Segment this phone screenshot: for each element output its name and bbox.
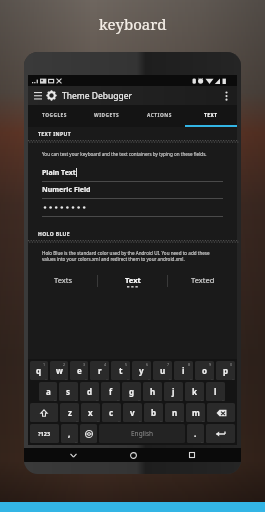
- button[interactable]: s: [59, 382, 78, 401]
- button[interactable]: 5: [111, 361, 130, 380]
- staticText: HOLO BLUE: [38, 231, 70, 238]
- staticText: Holo Blue is the standard color used by …: [42, 250, 223, 262]
- button[interactable]: Plain Text: [42, 164, 223, 182]
- staticText: v: [130, 407, 135, 418]
- button[interactable]: English: [99, 424, 185, 443]
- staticText: ACTIONS: [147, 112, 172, 119]
- button[interactable]: j: [164, 382, 183, 401]
- staticText: a: [46, 386, 51, 397]
- staticText: c: [109, 407, 114, 418]
- staticText: p: [223, 365, 229, 376]
- button[interactable]: n: [165, 403, 184, 422]
- staticText: m: [192, 407, 200, 418]
- staticText: TEXT: [204, 112, 218, 119]
- staticText: 6: [146, 362, 149, 367]
- button[interactable]: .: [187, 424, 204, 443]
- button[interactable]: b: [144, 403, 163, 422]
- staticText: z: [68, 407, 72, 418]
- button[interactable]: 2: [50, 361, 68, 380]
- button[interactable]: 0: [216, 361, 235, 380]
- staticText: 3: [83, 362, 86, 367]
- button[interactable]: g: [122, 382, 141, 401]
- staticText: d: [87, 386, 93, 397]
- staticText: 0: [230, 362, 233, 367]
- button[interactable]: Navigation drawer: [32, 90, 44, 102]
- staticText: o: [202, 365, 207, 376]
- button[interactable]: Numeric Field: [42, 182, 223, 199]
- button[interactable]: h: [143, 382, 162, 401]
- button[interactable]: 8: [174, 361, 193, 380]
- button[interactable]: l: [206, 382, 225, 401]
- button[interactable]: f: [101, 382, 120, 401]
- button[interactable]: m: [186, 403, 205, 422]
- staticText: ,: [68, 428, 71, 439]
- staticText: .: [194, 428, 197, 439]
- button[interactable]: Texted: [168, 275, 237, 285]
- button[interactable]: Enter: [206, 424, 235, 443]
- staticText: t: [119, 365, 123, 376]
- button[interactable]: More options: [220, 90, 232, 102]
- staticText: keyboard: [99, 14, 167, 34]
- staticText: u: [160, 365, 166, 376]
- button[interactable]: a: [39, 382, 57, 401]
- staticText: TOGGLES: [42, 112, 67, 119]
- staticText: English: [131, 429, 154, 438]
- button[interactable]: Recent apps: [182, 448, 202, 462]
- button[interactable]: c: [102, 403, 121, 422]
- staticText: 5: [125, 362, 128, 367]
- staticText: w: [56, 365, 63, 376]
- staticText: 8: [188, 362, 191, 367]
- button[interactable]: ?123: [30, 424, 59, 443]
- button[interactable]: WIDGETS: [81, 105, 133, 125]
- staticText: Texts: [54, 275, 72, 285]
- staticText: 9: [209, 362, 212, 367]
- button[interactable]: v: [123, 403, 142, 422]
- button[interactable]: x: [81, 403, 100, 422]
- staticText: 7: [167, 362, 170, 367]
- staticText: x: [88, 407, 93, 418]
- button[interactable]: 9: [195, 361, 214, 380]
- button[interactable]: TEXT: [185, 105, 237, 125]
- button[interactable]: Delete: [207, 403, 235, 422]
- staticText: 2: [63, 362, 66, 367]
- button[interactable]: Text: [98, 275, 167, 288]
- staticText: s: [66, 386, 71, 397]
- button[interactable]: Home: [123, 448, 143, 462]
- button[interactable]: ,: [61, 424, 78, 443]
- button[interactable]: 3: [70, 361, 88, 380]
- staticText: ?123: [38, 430, 51, 437]
- staticText: 1: [43, 362, 46, 367]
- button[interactable]: z: [60, 403, 79, 422]
- staticText: q: [36, 365, 42, 376]
- button[interactable]: TOGGLES: [28, 105, 81, 125]
- staticText: g: [129, 386, 135, 397]
- staticText: f: [109, 386, 113, 397]
- staticText: r: [98, 365, 102, 376]
- staticText: 4: [104, 362, 107, 367]
- button[interactable]: d: [80, 382, 99, 401]
- button[interactable]: 6: [132, 361, 151, 380]
- staticText: Text: [125, 275, 141, 285]
- staticText: WIDGETS: [94, 112, 120, 119]
- button[interactable]: Texts: [28, 275, 97, 285]
- button[interactable]: Change language: [80, 424, 97, 443]
- staticText: TEXT INPUT: [38, 131, 72, 138]
- staticText: k: [192, 386, 197, 397]
- button[interactable]: 7: [153, 361, 172, 380]
- staticText: h: [150, 386, 156, 397]
- button[interactable]: [42, 199, 223, 217]
- button[interactable]: ACTIONS: [133, 105, 185, 125]
- button[interactable]: Back: [63, 448, 83, 462]
- staticText: Numeric Field: [42, 185, 91, 195]
- staticText: y: [139, 365, 144, 376]
- button[interactable]: 4: [90, 361, 109, 380]
- button[interactable]: 1: [30, 361, 48, 380]
- staticText: i: [182, 365, 185, 376]
- staticText: b: [151, 407, 157, 418]
- button[interactable]: Shift: [30, 403, 58, 422]
- staticText: You can test your keyboard and the text …: [42, 151, 207, 157]
- staticText: Texted: [191, 275, 215, 285]
- button[interactable]: k: [185, 382, 204, 401]
- staticText: Plain Text: [42, 168, 76, 178]
- staticText: l: [214, 386, 217, 397]
